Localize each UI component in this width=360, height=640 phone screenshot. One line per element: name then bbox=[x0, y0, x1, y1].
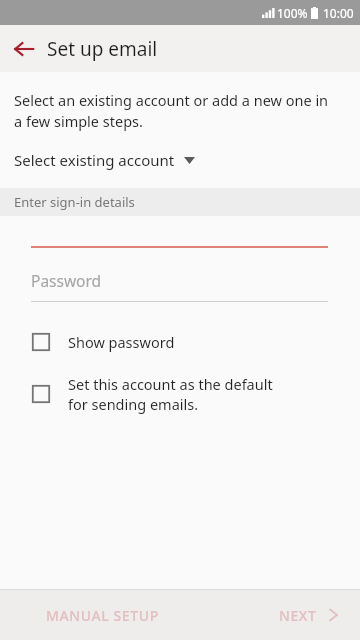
button[interactable]: MANUAL SETUP bbox=[0, 590, 279, 640]
button[interactable]: Select existing account bbox=[0, 146, 360, 174]
staticText: 100% bbox=[277, 5, 308, 21]
staticText: Show password bbox=[68, 332, 175, 352]
staticText: MANUAL SETUP bbox=[46, 606, 159, 625]
staticText: Set up email bbox=[47, 36, 158, 62]
button[interactable]: Set this account as the default for send… bbox=[0, 370, 360, 418]
button[interactable]: Navigate up bbox=[8, 33, 40, 65]
staticText: Select existing account bbox=[14, 150, 175, 170]
staticText: Password bbox=[31, 270, 102, 291]
button[interactable]: Show password bbox=[0, 328, 360, 356]
staticText: Enter sign-in details bbox=[14, 193, 135, 211]
staticText: Set this account as the default for send… bbox=[68, 374, 273, 414]
button[interactable]: NEXT bbox=[279, 590, 360, 640]
staticText: Select an existing account or add a new … bbox=[14, 90, 329, 132]
staticText: NEXT bbox=[279, 606, 317, 625]
staticText: 10:00 bbox=[323, 5, 354, 21]
